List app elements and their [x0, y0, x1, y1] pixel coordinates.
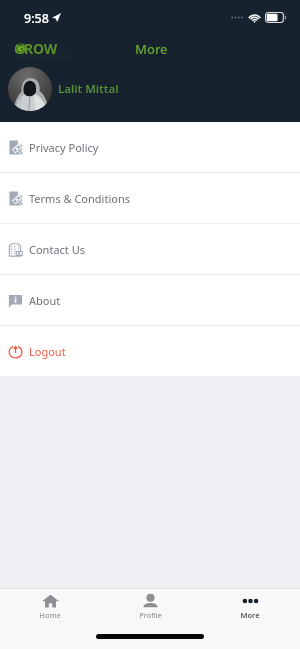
button[interactable]: GROW logo [14, 39, 70, 61]
staticText: Home [39, 610, 61, 620]
button[interactable]: Lalit Mittal [0, 65, 300, 122]
button[interactable]: More [127, 34, 176, 65]
staticText: Profile [139, 610, 162, 620]
button[interactable]: Privacy Policy [0, 122, 300, 172]
staticText: Logout [29, 344, 66, 359]
button[interactable]: Terms & Conditions [0, 173, 300, 223]
button[interactable]: Logout [0, 326, 300, 376]
staticText: Lalit Mittal [58, 81, 119, 97]
button[interactable]: More [200, 589, 300, 621]
staticText: Privacy Policy [29, 140, 99, 155]
button[interactable]: About [0, 275, 300, 325]
staticText: More [240, 610, 260, 620]
staticText: Terms & Conditions [29, 191, 130, 206]
staticText: GROW [14, 39, 57, 58]
button[interactable]: Contact Us [0, 224, 300, 274]
staticText: About [29, 293, 61, 308]
staticText: Contact Us [29, 242, 85, 257]
staticText: 9:58 [24, 10, 49, 27]
staticText: GROW ASSURANCE ASSOCIATION [15, 55, 71, 59]
button[interactable]: Profile [100, 589, 200, 621]
staticText: More [135, 40, 168, 58]
button[interactable]: Home [0, 589, 100, 621]
